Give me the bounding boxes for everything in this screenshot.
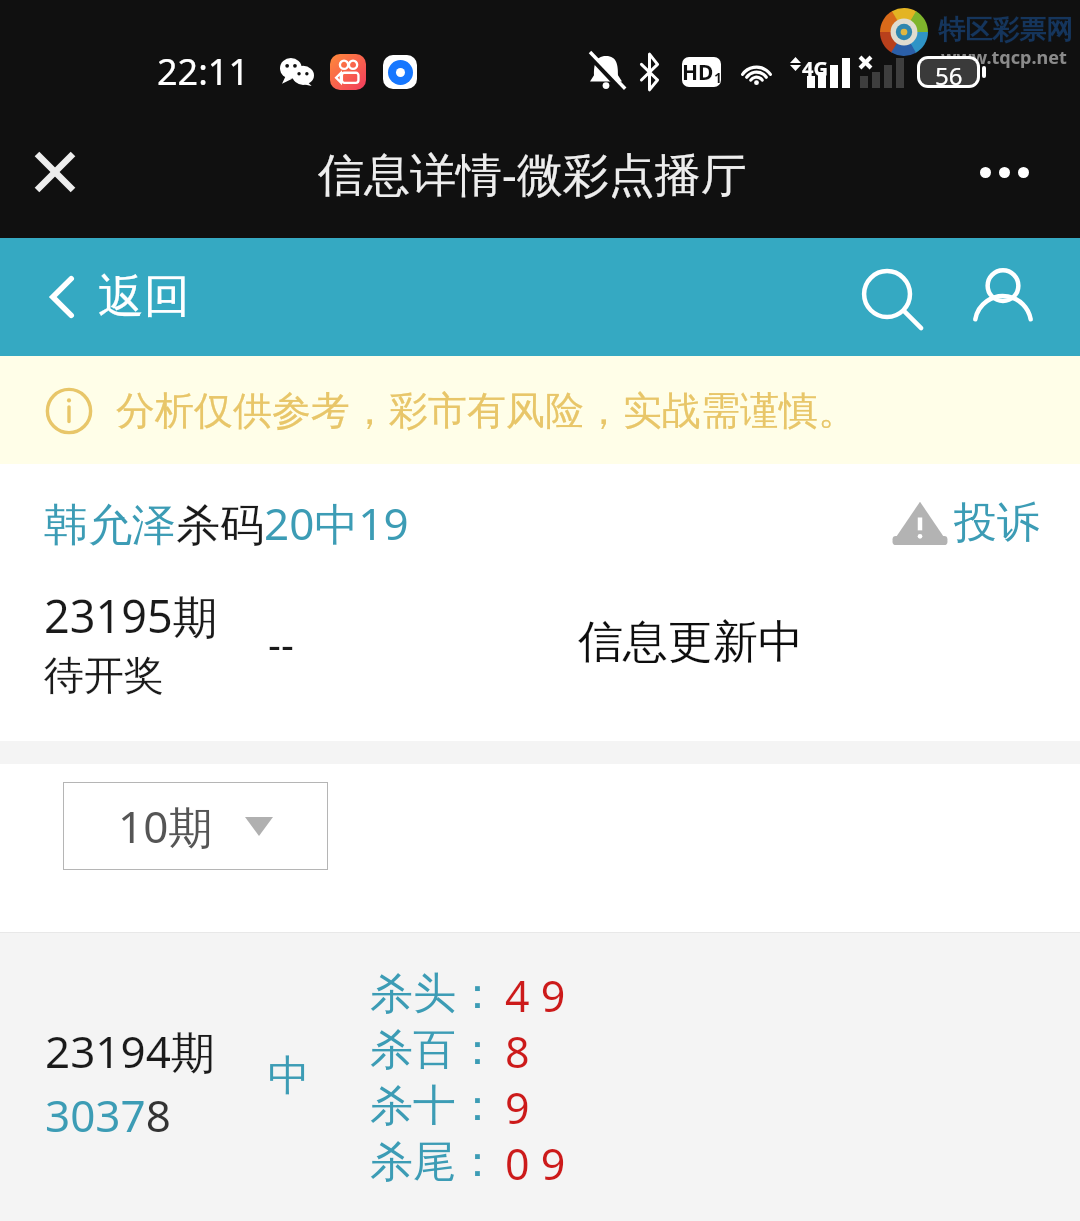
- staticText: 特区彩票网: [938, 13, 1073, 47]
- staticText: 10期: [118, 796, 213, 856]
- staticText: 23195期: [44, 585, 218, 646]
- staticText: 返回: [98, 268, 190, 326]
- staticText: www.tqcp.net: [941, 45, 1067, 70]
- staticText: 杀头：: [370, 967, 499, 1021]
- staticText: 56: [935, 59, 963, 85]
- staticText: 22:11: [157, 47, 250, 96]
- staticText: 4 9: [505, 966, 566, 1022]
- button[interactable]: 投诉: [888, 492, 1042, 554]
- staticText: 杀尾：: [370, 1135, 499, 1189]
- button[interactable]: Search: [850, 254, 936, 340]
- staticText: 杀百：: [370, 1023, 499, 1077]
- staticText: 分析仅供参考，彩市有风险，实战需谨慎。: [116, 386, 857, 435]
- staticText: 信息详情-微彩点播厅: [318, 142, 747, 205]
- staticText: 1: [714, 68, 721, 87]
- staticText: 0 9: [505, 1134, 566, 1190]
- button[interactable]: Close: [17, 140, 93, 216]
- staticText: HD: [682, 58, 714, 87]
- staticText: 30378: [45, 1085, 171, 1145]
- staticText: 杀十：: [370, 1079, 499, 1133]
- staticText: 韩允泽杀码20中19: [44, 493, 409, 553]
- button[interactable]: More options: [966, 140, 1042, 216]
- staticText: 4G: [802, 55, 828, 82]
- button[interactable]: 10期: [63, 782, 328, 870]
- staticText: 8: [505, 1022, 530, 1078]
- staticText: --: [268, 616, 294, 670]
- staticText: 待开奖: [44, 650, 164, 700]
- staticText: 中: [268, 1050, 310, 1103]
- button[interactable]: Account: [960, 254, 1046, 340]
- staticText: 23194期: [45, 1021, 215, 1081]
- staticText: 信息更新中: [578, 614, 803, 671]
- staticText: 9: [505, 1078, 530, 1134]
- button[interactable]: 返回: [41, 258, 200, 336]
- staticText: 投诉: [954, 496, 1040, 550]
